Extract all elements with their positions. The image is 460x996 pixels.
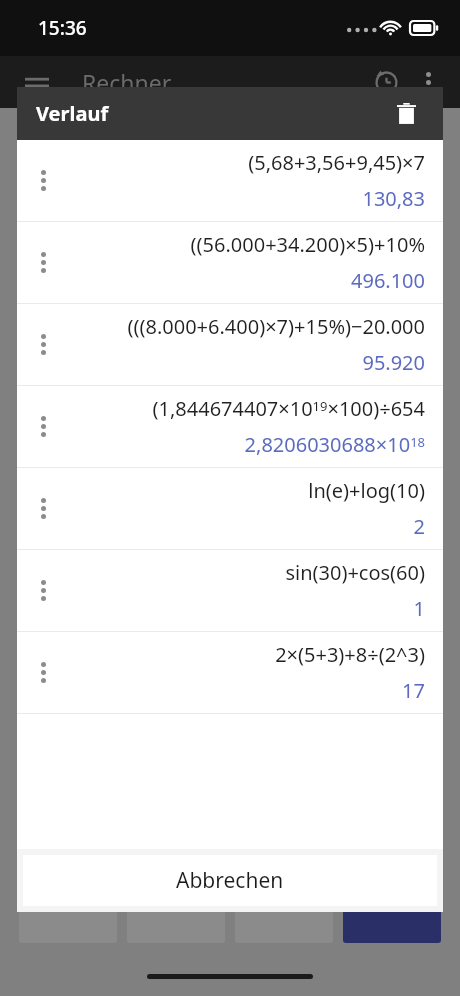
- button[interactable]: [235, 875, 333, 943]
- button[interactable]: Delete history: [385, 93, 427, 135]
- button[interactable]: [127, 797, 225, 865]
- button[interactable]: [343, 797, 441, 865]
- staticText: ((56.000+34.200)×5)+10%: [190, 231, 425, 258]
- staticText: 2×(5+3)+8÷(2^3): [275, 641, 425, 668]
- button[interactable]: (5,68+3,56+9,45)×7: [17, 140, 443, 222]
- button[interactable]: [235, 797, 333, 865]
- staticText: 496.100: [351, 267, 425, 294]
- button[interactable]: sin(30)+cos(60): [17, 550, 443, 632]
- button[interactable]: [127, 875, 225, 943]
- button[interactable]: [235, 563, 333, 631]
- button[interactable]: [343, 875, 441, 943]
- staticText: sin(30)+cos(60): [285, 559, 425, 586]
- staticText: 95.920: [362, 349, 425, 376]
- staticText: 15:36: [38, 15, 87, 41]
- button[interactable]: (((8.000+6.400)×7)+15%)−20.000: [17, 304, 443, 386]
- button[interactable]: History: [364, 60, 408, 104]
- button[interactable]: [19, 641, 117, 709]
- button[interactable]: 2×(5+3)+8÷(2^3): [17, 632, 443, 714]
- staticText: 17: [402, 677, 425, 704]
- button[interactable]: ln(e)+log(10): [17, 468, 443, 550]
- staticText: (1,844674407×1019×100)÷654: [152, 395, 425, 422]
- button[interactable]: [343, 641, 441, 709]
- staticText: Abbrechen: [176, 866, 284, 895]
- staticText: (((8.000+6.400)×7)+15%)−20.000: [127, 313, 425, 340]
- staticText: 2,8206030688×1018: [244, 431, 425, 458]
- staticText: 1: [413, 595, 425, 622]
- button[interactable]: [343, 563, 441, 631]
- staticText: 130,83: [362, 185, 425, 212]
- staticText: Verlauf: [36, 100, 109, 127]
- staticText: ln(e)+log(10): [308, 477, 425, 504]
- staticText: (5,68+3,56+9,45)×7: [248, 149, 425, 176]
- button[interactable]: Menu: [14, 59, 60, 105]
- button[interactable]: Abbrechen: [23, 855, 437, 906]
- button[interactable]: [19, 563, 117, 631]
- button[interactable]: More options: [408, 62, 448, 102]
- button[interactable]: [235, 641, 333, 709]
- staticText: 2: [413, 513, 425, 540]
- button[interactable]: [19, 797, 117, 865]
- staticText: Rechner: [82, 67, 172, 98]
- button[interactable]: ((56.000+34.200)×5)+10%: [17, 222, 443, 304]
- button[interactable]: (1,844674407×1019×100)÷654: [17, 386, 443, 468]
- button[interactable]: [19, 875, 117, 943]
